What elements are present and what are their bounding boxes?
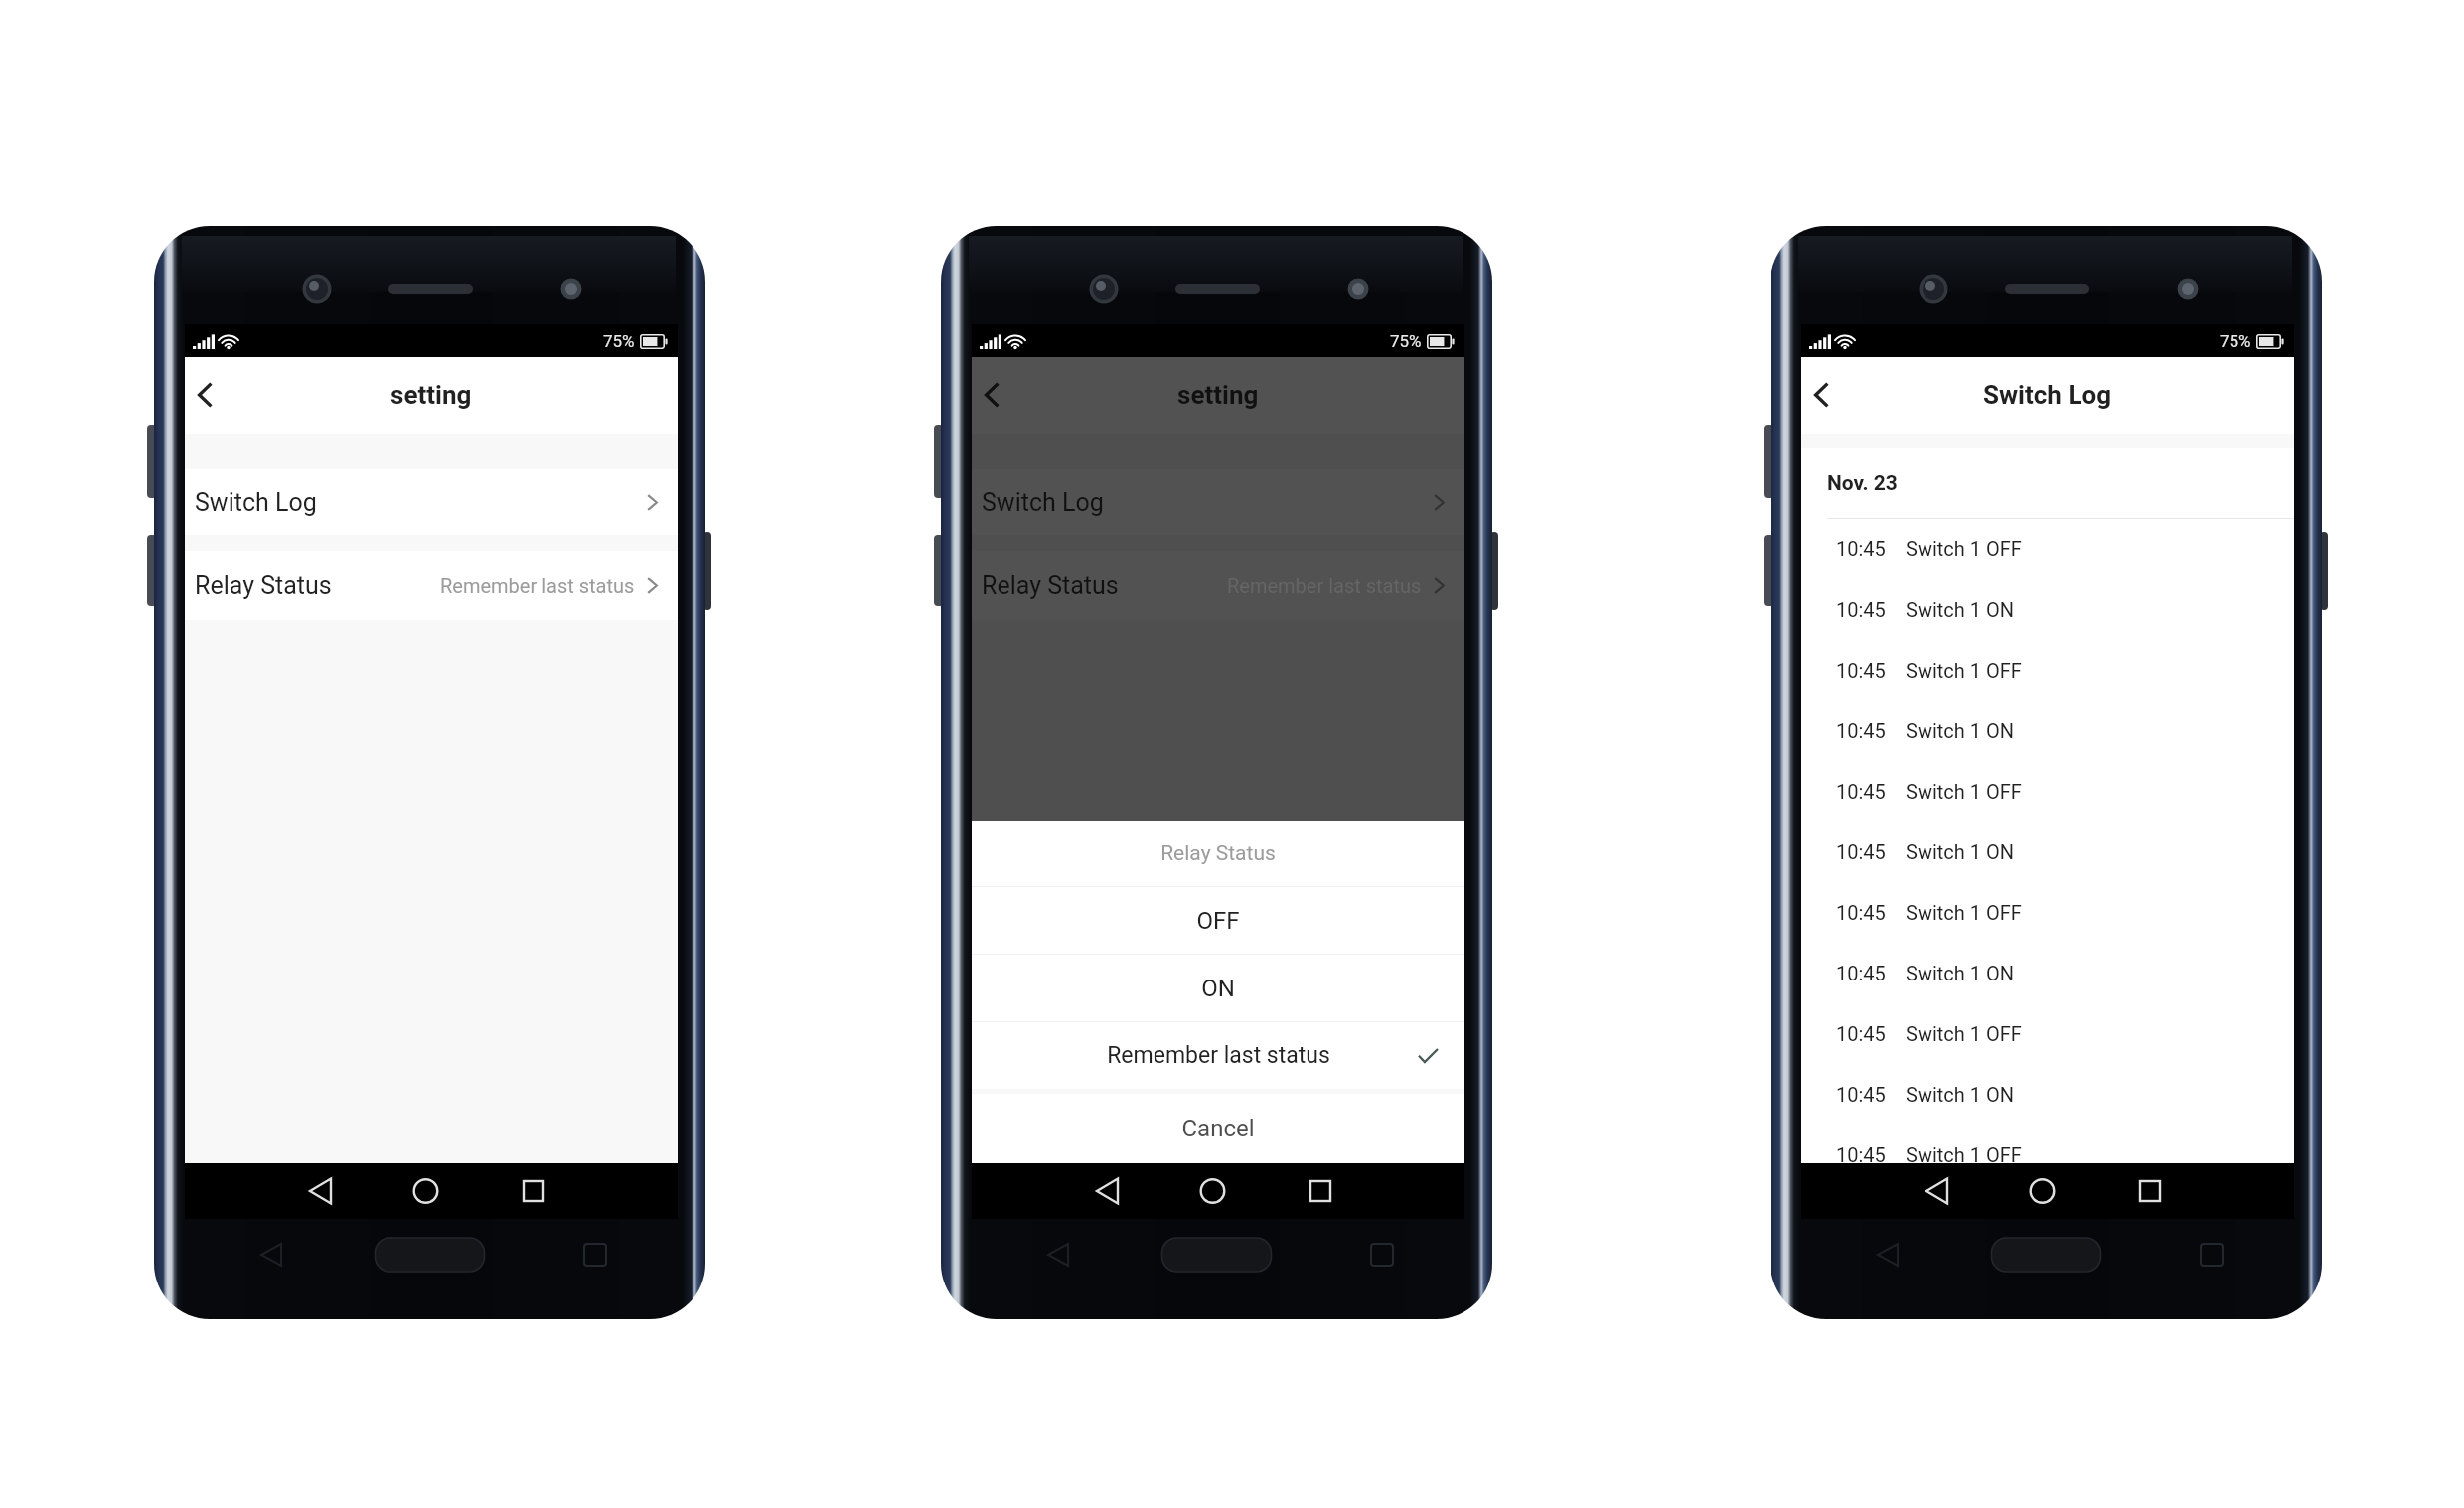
button[interactable]: Relay Status [185, 551, 678, 620]
button[interactable]: 10:45 [1801, 579, 2294, 640]
button[interactable]: 10:45 [1801, 943, 2294, 1003]
staticText: Switch 1 OFF [1906, 1143, 2022, 1163]
staticText: Switch 1 OFF [1906, 659, 2022, 681]
button[interactable]: Remember last status [972, 1022, 1464, 1089]
button[interactable]: Switch Log [972, 469, 1464, 535]
button[interactable]: 10:45 [1801, 640, 2294, 700]
staticText: 10:45 [1836, 840, 1886, 863]
staticText: 10:45 [1836, 1083, 1886, 1106]
staticText: Remember last status [1227, 574, 1422, 597]
staticText: Switch Log [1983, 380, 2112, 410]
staticText: Switch Log [195, 488, 317, 517]
staticText: Relay Status [1160, 841, 1276, 866]
button[interactable]: 10:45 [1801, 761, 2294, 822]
staticText: 10:45 [1836, 962, 1886, 984]
staticText: Remember last status [440, 574, 635, 597]
staticText: Switch 1 ON [1906, 962, 2014, 984]
staticText: Switch 1 OFF [1906, 537, 2022, 560]
button[interactable]: Home [1183, 1163, 1243, 1219]
staticText: Switch Log [982, 488, 1104, 517]
staticText: setting [1177, 380, 1259, 410]
staticText: 75% [2220, 331, 2251, 351]
button[interactable]: 10:45 [1801, 1125, 2294, 1163]
button[interactable]: OFF [972, 887, 1464, 954]
button[interactable]: Home [2013, 1163, 2073, 1219]
staticText: Switch 1 OFF [1906, 780, 2022, 803]
button[interactable]: Back [290, 1163, 350, 1219]
button[interactable]: Switch Log [185, 469, 678, 535]
staticText: Switch 1 ON [1906, 719, 2014, 742]
button[interactable]: 10:45 [1801, 1064, 2294, 1125]
staticText: Cancel [1181, 1115, 1255, 1142]
staticText: 10:45 [1836, 598, 1886, 621]
button[interactable]: Cancel [972, 1094, 1464, 1163]
staticText: Relay Status [982, 571, 1119, 600]
staticText: 10:45 [1836, 537, 1886, 560]
button[interactable]: Back [972, 365, 1011, 426]
button[interactable]: 10:45 [1801, 1003, 2294, 1064]
staticText: Switch 1 ON [1906, 598, 2014, 621]
button[interactable]: Recent apps [1291, 1163, 1350, 1219]
staticText: Relay Status [195, 571, 332, 600]
staticText: 10:45 [1836, 719, 1886, 742]
button[interactable]: Relay Status [972, 551, 1464, 620]
staticText: 10:45 [1836, 780, 1886, 803]
button[interactable]: Back [1801, 365, 1841, 426]
button[interactable]: 10:45 [1801, 700, 2294, 761]
button[interactable]: 10:45 [1801, 822, 2294, 882]
staticText: setting [390, 380, 472, 410]
button[interactable]: Relay Status [972, 821, 1464, 886]
button[interactable]: 10:45 [1801, 882, 2294, 943]
staticText: OFF [1196, 907, 1240, 935]
staticText: Switch 1 ON [1906, 1083, 2014, 1106]
button[interactable]: Recent apps [2120, 1163, 2180, 1219]
button[interactable]: 10:45 [1801, 519, 2294, 579]
staticText: 75% [1390, 331, 1422, 351]
staticText: ON [1201, 975, 1235, 1002]
button[interactable]: Home [396, 1163, 456, 1219]
button[interactable]: Back [1077, 1163, 1137, 1219]
staticText: 10:45 [1836, 659, 1886, 681]
staticText: 10:45 [1836, 1022, 1886, 1045]
staticText: 75% [603, 331, 635, 351]
staticText: 10:45 [1836, 1143, 1886, 1163]
staticText: Switch 1 ON [1906, 840, 2014, 863]
staticText: Remember last status [1107, 1042, 1330, 1069]
button[interactable]: Recent apps [504, 1163, 563, 1219]
staticText: Switch 1 OFF [1906, 1022, 2022, 1045]
staticText: Nov. 23 [1827, 471, 1898, 496]
button[interactable]: ON [972, 955, 1464, 1021]
staticText: 10:45 [1836, 901, 1886, 924]
button[interactable]: Back [185, 365, 225, 426]
staticText: Switch 1 OFF [1906, 901, 2022, 924]
button[interactable]: Back [1907, 1163, 1966, 1219]
